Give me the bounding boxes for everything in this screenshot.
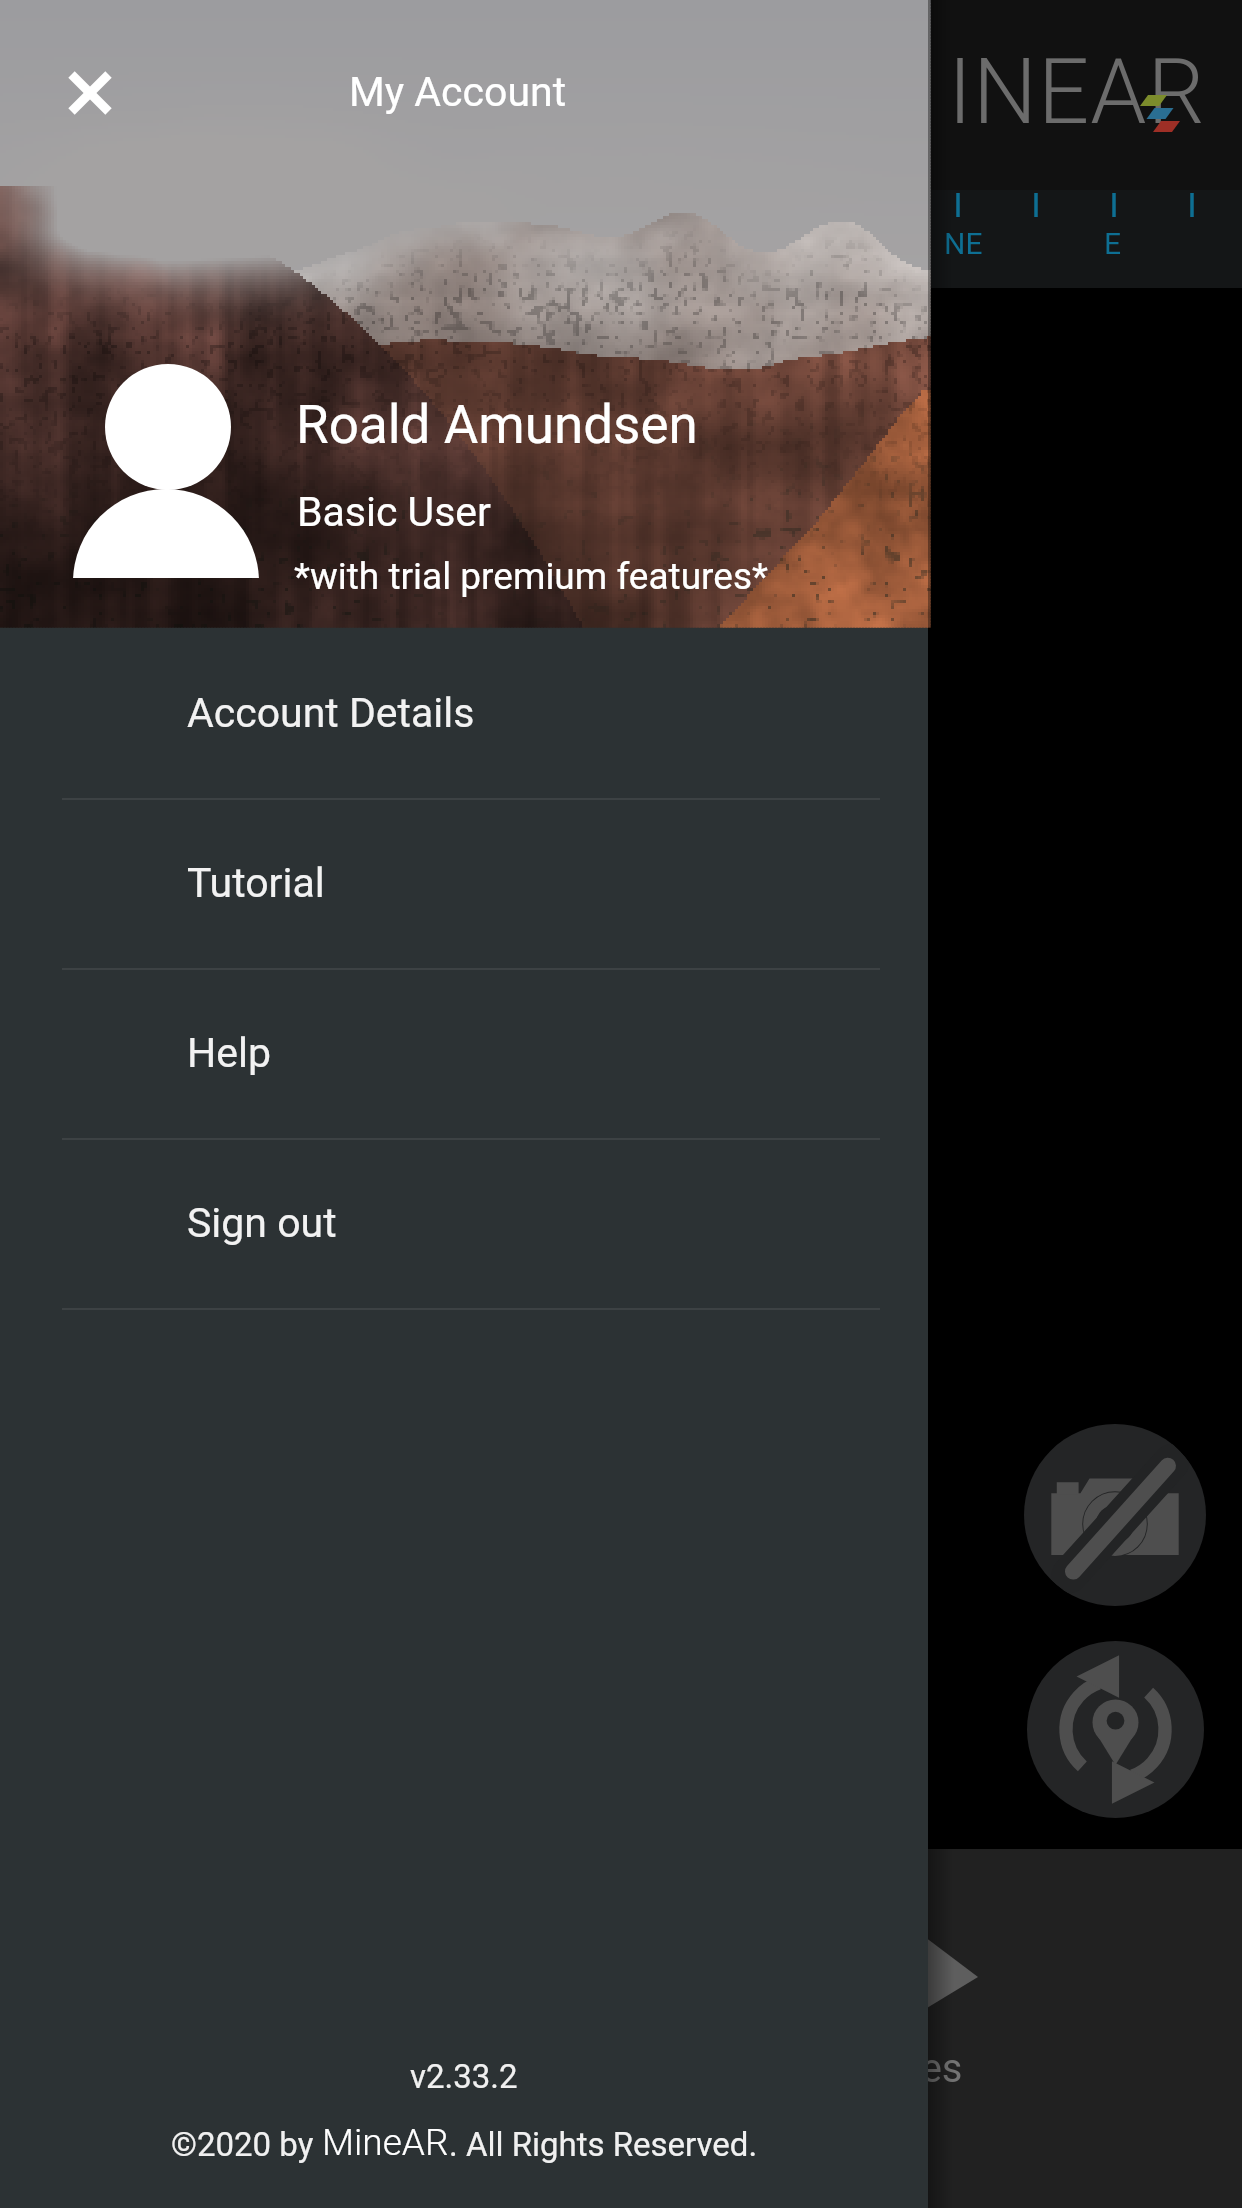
staticText: E (1104, 226, 1122, 261)
button[interactable]: Sign out (0, 1140, 928, 1310)
staticText: *with trial premium features* (294, 555, 768, 598)
button[interactable]: Next (850, 1867, 990, 2057)
staticText: NE (944, 226, 983, 261)
staticText: My Account (349, 68, 567, 116)
staticText: Tutorial (187, 859, 325, 907)
button[interactable]: Account Details (0, 630, 928, 800)
staticText: v2.33.2 (410, 2057, 518, 2096)
staticText: ©2020 by (171, 2125, 322, 2164)
button[interactable]: Disable camera (1024, 1424, 1206, 1606)
staticText: Basic User (297, 488, 491, 536)
staticText: . All Rights Reserved. (449, 2125, 758, 2164)
staticText: MineAR (322, 2121, 449, 2164)
button[interactable]: Close (44, 47, 136, 139)
button[interactable]: Help (0, 970, 928, 1140)
staticText: Sign out (187, 1199, 337, 1247)
staticText: INEAR (948, 40, 1206, 145)
button[interactable]: Refresh location (1027, 1641, 1204, 1818)
staticText: Roald Amundsen (296, 394, 698, 456)
button[interactable]: Tutorial (0, 800, 928, 970)
staticText: yles (892, 2045, 963, 2092)
staticText: Help (187, 1029, 271, 1077)
button[interactable]: yles (770, 2035, 1030, 2107)
staticText: Account Details (187, 689, 475, 737)
